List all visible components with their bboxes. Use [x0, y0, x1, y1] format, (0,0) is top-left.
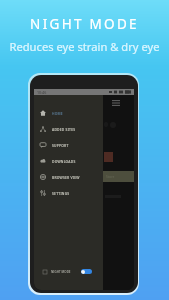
- button[interactable]: DOWNLOADS: [34, 153, 103, 169]
- button[interactable]: SUPPORT: [34, 137, 103, 153]
- button[interactable]: NIGHT MODE: [34, 266, 103, 277]
- staticText: NIGHT MODE: [30, 15, 139, 33]
- staticText: HOME: [52, 111, 63, 116]
- staticText: Store: [106, 174, 115, 179]
- button[interactable]: Menu: [108, 96, 123, 109]
- staticText: BROWSER VIEW: [52, 175, 80, 180]
- button[interactable]: ADDED SITES: [34, 121, 103, 137]
- staticText: SUPPORT: [52, 143, 69, 148]
- button[interactable]: SETTINGS: [34, 185, 103, 201]
- button[interactable]: HOME: [34, 105, 103, 121]
- staticText: 10:46: [37, 90, 47, 95]
- staticText: DOWNLOADS: [52, 159, 76, 164]
- staticText: NIGHT MODE: [51, 270, 71, 274]
- staticText: ADDED SITES: [52, 127, 76, 132]
- staticText: Reduces eye strain & dry eye: [9, 39, 160, 54]
- button[interactable]: BROWSER VIEW: [34, 169, 103, 185]
- staticText: SETTINGS: [52, 191, 70, 196]
